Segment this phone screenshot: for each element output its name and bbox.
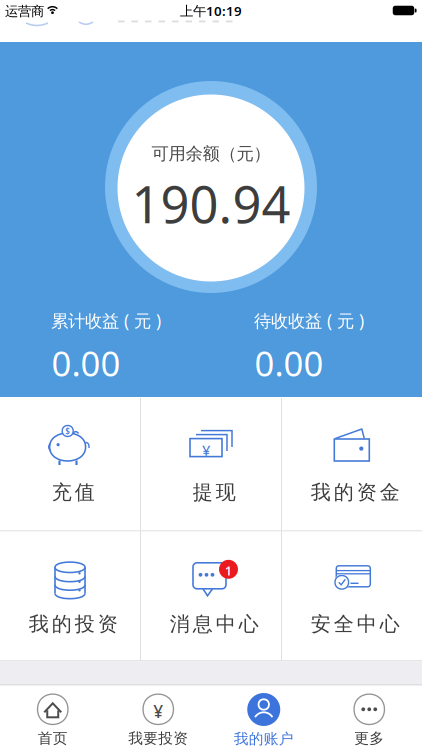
staticText: 首页: [38, 729, 68, 747]
staticText: 0.00: [254, 340, 323, 386]
button[interactable]: $: [0, 398, 140, 530]
staticText: 运营商: [5, 3, 44, 19]
button[interactable]: 我的投资: [0, 531, 140, 661]
staticText: 充值: [52, 480, 95, 505]
staticText: $: [65, 426, 70, 436]
button[interactable]: 我的账户: [211, 685, 316, 750]
staticText: ¥: [202, 440, 210, 460]
staticText: 更多: [354, 729, 384, 747]
staticText: 消息中心: [170, 612, 259, 636]
button[interactable]: 安全中心: [282, 531, 422, 661]
staticText: 待收收益 ( 元 ): [254, 309, 364, 332]
button[interactable]: 首页: [0, 685, 105, 750]
staticText: 我要投资: [128, 729, 188, 747]
staticText: 提现: [193, 480, 236, 505]
staticText: 我的投资: [29, 612, 118, 636]
button[interactable]: ¥: [141, 398, 281, 530]
staticText: 累计收益 ( 元 ): [51, 309, 161, 332]
staticText: ¥: [153, 700, 163, 723]
staticText: 我的账户: [234, 730, 294, 748]
staticText: 我的资金: [311, 480, 400, 505]
staticText: 可用余额（元）: [151, 143, 270, 164]
staticText: 190.94: [131, 170, 290, 237]
staticText: 0.00: [51, 340, 120, 386]
staticText: 上午10:19: [180, 2, 242, 20]
button[interactable]: 我的资金: [282, 398, 422, 530]
button[interactable]: ¥: [105, 685, 211, 750]
staticText: 安全中心: [311, 612, 400, 636]
button[interactable]: 更多: [316, 685, 422, 750]
staticText: 1: [225, 563, 232, 579]
button[interactable]: 1: [141, 531, 281, 661]
